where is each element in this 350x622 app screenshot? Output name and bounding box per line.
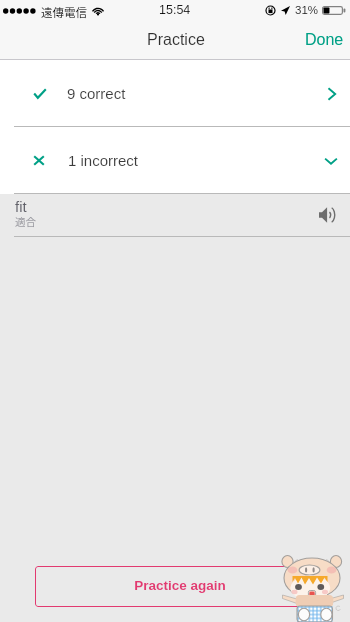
staticText: 31%	[295, 4, 319, 17]
staticText: fit	[15, 198, 27, 215]
button[interactable]: 1 incorrect	[0, 127, 350, 194]
button[interactable]: fit	[0, 194, 350, 236]
staticText: Practice again	[134, 578, 226, 593]
staticText: 適合	[15, 214, 36, 229]
staticText: Done	[305, 31, 344, 49]
staticText: 9 correct	[67, 85, 126, 102]
button[interactable]: Play audio	[307, 195, 347, 235]
staticText: 15:54	[159, 3, 191, 17]
button[interactable]: 9 correct	[0, 60, 350, 127]
button[interactable]: Practice again	[35, 566, 318, 607]
staticText: 遠傳電信	[41, 4, 87, 21]
staticText: Practice	[147, 31, 205, 49]
staticText: 1 incorrect	[68, 152, 139, 169]
button[interactable]: Done	[291, 28, 350, 58]
